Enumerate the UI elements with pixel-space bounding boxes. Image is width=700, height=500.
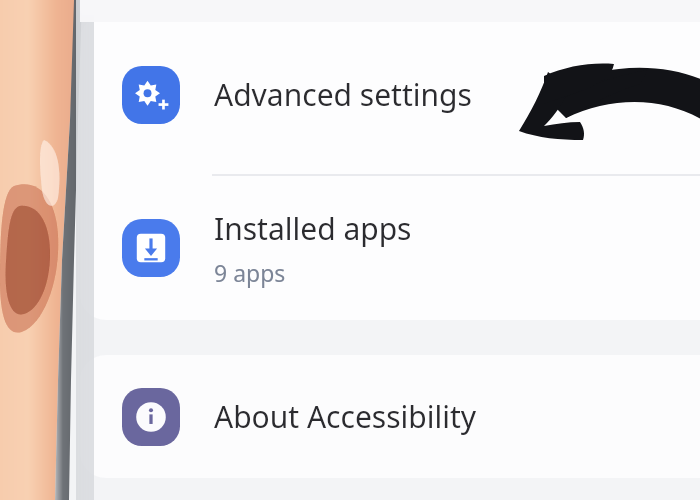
staticText: About Accessibility bbox=[214, 396, 477, 437]
button[interactable]: Advanced settings bbox=[80, 15, 700, 174]
button[interactable]: Installed apps bbox=[80, 176, 700, 320]
button[interactable]: About Accessibility bbox=[80, 355, 700, 478]
staticText: 9 apps bbox=[214, 257, 286, 288]
staticText: Advanced settings bbox=[214, 74, 472, 115]
other: Pointer arrow highlighting Advanced sett… bbox=[0, 0, 700, 500]
staticText: Installed apps bbox=[214, 208, 412, 249]
